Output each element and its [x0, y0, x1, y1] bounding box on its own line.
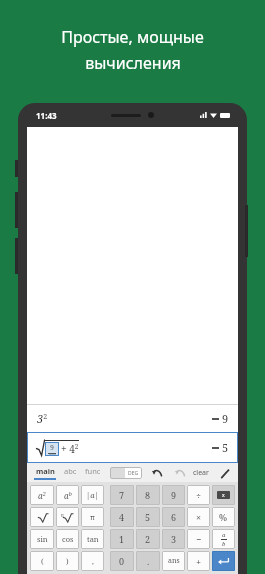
- staticText: π: [90, 512, 95, 522]
- button[interactable]: func: [83, 466, 103, 480]
- button[interactable]: [30, 507, 54, 527]
- staticText: .: [147, 555, 150, 567]
- staticText: 5: [145, 511, 151, 523]
- staticText: 9: [222, 411, 229, 426]
- staticText: abc: [64, 466, 77, 476]
- staticText: 1: [119, 533, 125, 545]
- button[interactable]: 9: [162, 485, 185, 505]
- staticText: a2: [38, 490, 46, 501]
- staticText: 9: [50, 443, 54, 453]
- button[interactable]: Redo: [173, 466, 186, 479]
- staticText: ,: [92, 556, 94, 566]
- staticText: вычисления: [85, 52, 181, 74]
- staticText: + 42: [61, 442, 79, 456]
- button[interactable]: 32: [27, 405, 238, 432]
- button[interactable]: ab: [56, 485, 79, 505]
- button[interactable]: (: [30, 551, 54, 571]
- staticText: ans: [168, 556, 180, 566]
- button[interactable]: 1: [110, 529, 134, 549]
- button[interactable]: sin: [30, 529, 54, 549]
- button[interactable]: 4: [110, 507, 134, 527]
- button[interactable]: clear: [191, 468, 211, 478]
- button[interactable]: n: [56, 507, 79, 527]
- staticText: DEG: [128, 470, 139, 477]
- button[interactable]: ): [56, 551, 79, 571]
- button[interactable]: Settings: [219, 467, 231, 479]
- staticText: b: [222, 540, 226, 548]
- staticText: sin: [37, 534, 48, 544]
- button[interactable]: 6: [162, 507, 185, 527]
- button[interactable]: abc: [62, 466, 79, 480]
- button[interactable]: %: [212, 507, 235, 527]
- staticText: main: [36, 466, 55, 476]
- staticText: |a|: [86, 490, 99, 500]
- staticText: 11:43: [36, 110, 57, 121]
- button[interactable]: ×: [187, 507, 210, 527]
- staticText: 8: [145, 489, 151, 501]
- button[interactable]: −: [187, 529, 210, 549]
- button[interactable]: Angle unit DEG: [110, 467, 142, 479]
- button[interactable]: 8: [136, 485, 160, 505]
- staticText: −: [196, 533, 202, 545]
- staticText: 5: [222, 440, 229, 455]
- staticText: ): [66, 556, 69, 566]
- button[interactable]: a2: [30, 485, 54, 505]
- button[interactable]: 9: [27, 432, 238, 463]
- staticText: 0: [119, 555, 125, 567]
- staticText: 3: [171, 533, 177, 545]
- staticText: n: [61, 512, 64, 518]
- button[interactable]: ÷: [187, 485, 210, 505]
- staticText: 4: [119, 511, 125, 523]
- staticText: ÷: [196, 489, 202, 501]
- button[interactable]: |a|: [81, 485, 104, 505]
- staticText: x: [222, 492, 225, 499]
- button[interactable]: main: [32, 466, 58, 480]
- staticText: ×: [196, 511, 202, 523]
- staticText: %: [219, 511, 228, 523]
- button[interactable]: cos: [56, 529, 79, 549]
- staticText: a: [222, 531, 226, 539]
- button[interactable]: ans: [162, 551, 185, 571]
- button[interactable]: Undo: [150, 466, 163, 479]
- staticText: 9: [171, 489, 177, 501]
- staticText: 6: [171, 511, 177, 523]
- staticText: (: [41, 556, 44, 566]
- button[interactable]: 7: [110, 485, 134, 505]
- staticText: Простые, мощные: [61, 26, 204, 48]
- button[interactable]: Enter: [212, 551, 235, 571]
- staticText: func: [85, 466, 101, 476]
- staticText: cos: [62, 534, 74, 544]
- button[interactable]: 3: [162, 529, 185, 549]
- button[interactable]: a: [212, 529, 235, 549]
- button[interactable]: 2: [136, 529, 160, 549]
- button[interactable]: +: [187, 551, 210, 571]
- staticText: 32: [37, 411, 48, 426]
- staticText: 7: [119, 489, 125, 501]
- button[interactable]: π: [81, 507, 104, 527]
- button[interactable]: tan: [81, 529, 104, 549]
- button[interactable]: 5: [136, 507, 160, 527]
- staticText: clear: [193, 468, 209, 478]
- staticText: 2: [145, 533, 151, 545]
- button[interactable]: 0: [110, 551, 134, 571]
- button[interactable]: Backspace: [212, 485, 235, 505]
- button[interactable]: ,: [81, 551, 104, 571]
- staticText: +: [196, 555, 202, 567]
- staticText: ab: [64, 490, 72, 501]
- button[interactable]: .: [136, 551, 160, 571]
- staticText: tan: [87, 534, 99, 544]
